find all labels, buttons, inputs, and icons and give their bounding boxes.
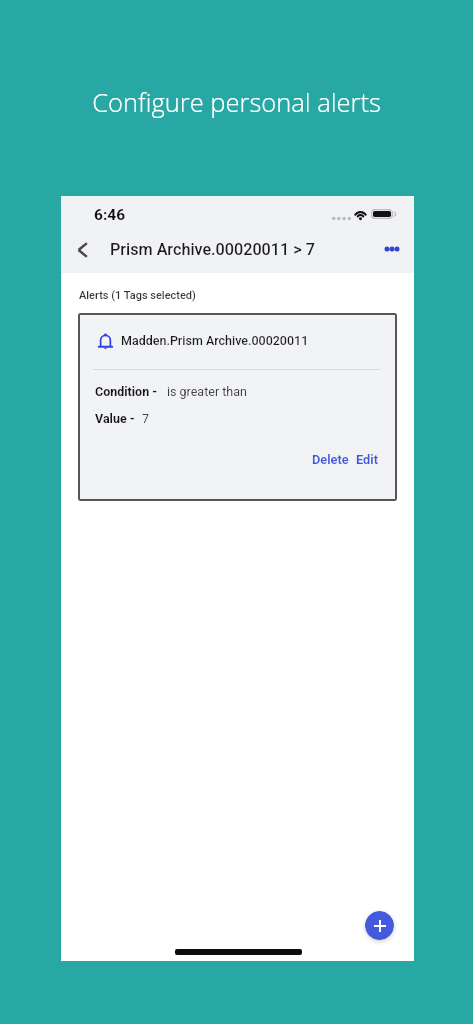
button[interactable]: Add alert [365, 911, 394, 940]
staticText: is greater than [167, 384, 247, 399]
staticText: Edit [356, 452, 378, 467]
staticText: Value - [95, 411, 135, 426]
button[interactable]: Madden.Prism Archive.00020011 [78, 313, 397, 501]
button[interactable]: Edit [356, 452, 378, 467]
staticText: Delete [312, 452, 349, 467]
button[interactable]: Back [69, 237, 95, 263]
staticText: Alerts (1 Tags selected) [79, 289, 196, 302]
staticText: 6:46 [94, 206, 126, 224]
button[interactable]: More options [377, 236, 407, 262]
button[interactable]: Delete [312, 452, 349, 467]
staticText: Condition - [95, 384, 158, 399]
staticText: Madden.Prism Archive.00020011 [121, 333, 309, 348]
staticText: 7 [142, 411, 150, 426]
staticText: Prism Archive.00020011 > 7 [110, 240, 315, 259]
staticText: Configure personal alerts [92, 85, 381, 120]
